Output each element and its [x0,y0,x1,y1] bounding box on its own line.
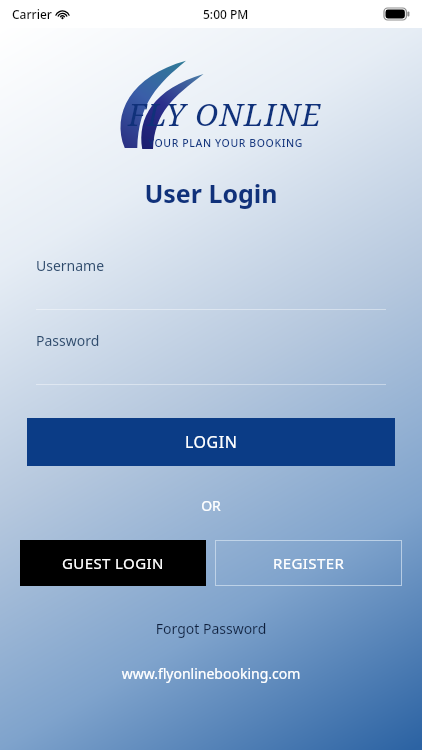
button[interactable]: Username [36,256,386,310]
button[interactable]: Forgot Password [0,617,422,640]
button[interactable]: Password [36,331,386,385]
staticText: Carrier [12,6,52,22]
button[interactable]: LOGIN [27,418,395,466]
staticText: FLY ONLINE [128,93,322,135]
staticText: User Login [0,176,422,210]
staticText: OR [0,496,422,515]
staticText: YOUR PLAN YOUR BOOKING [148,136,303,150]
button[interactable]: www.flyonlinebooking.com [0,662,422,685]
staticText: 5:00 PM [203,6,249,22]
staticText: GUEST LOGIN [62,553,164,573]
staticText: Password [36,331,100,350]
button[interactable]: REGISTER [215,540,402,586]
staticText: Username [36,256,105,275]
staticText: REGISTER [273,553,345,573]
staticText: LOGIN [185,431,238,453]
button[interactable]: GUEST LOGIN [20,540,206,586]
